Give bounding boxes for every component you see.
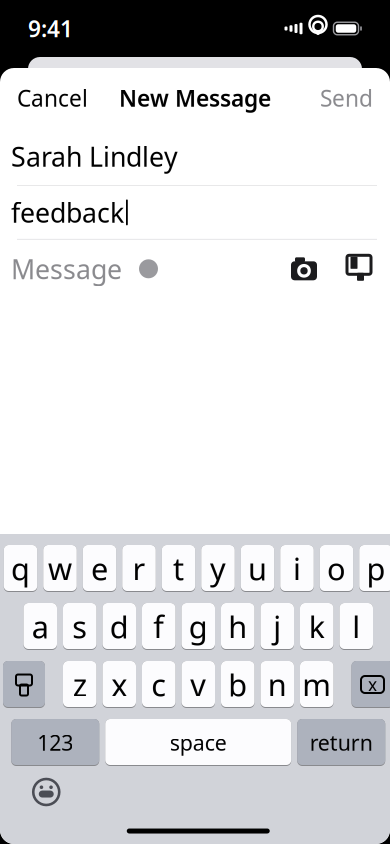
staticText: l <box>352 606 360 647</box>
staticText: v <box>190 664 206 705</box>
button[interactable]: feedback <box>0 186 390 239</box>
staticText: g <box>189 606 208 647</box>
button[interactable]: p <box>359 545 390 592</box>
staticText: a <box>32 606 49 647</box>
button[interactable]: 123 <box>11 719 99 766</box>
staticText: q <box>11 548 30 589</box>
staticText: h <box>228 606 247 647</box>
staticText: space <box>170 728 227 757</box>
staticText: return <box>310 728 373 757</box>
staticText: w <box>48 548 72 589</box>
button[interactable]: x <box>102 661 136 708</box>
staticText: m <box>302 664 331 705</box>
staticText: x <box>368 673 377 696</box>
button[interactable]: Sarah Lindley <box>0 128 390 185</box>
staticText: Sarah Lindley <box>11 139 178 174</box>
button[interactable]: m <box>300 661 333 708</box>
staticText: Cancel <box>17 83 88 113</box>
button[interactable]: a <box>23 603 57 650</box>
staticText: r <box>132 548 145 589</box>
button[interactable]: s <box>63 603 96 650</box>
button[interactable]: v <box>181 661 215 708</box>
staticText: feedback <box>11 195 124 230</box>
button[interactable]: Cancel <box>11 73 94 123</box>
button[interactable]: f <box>142 603 175 650</box>
staticText: k <box>309 606 325 647</box>
staticText: Send <box>320 83 373 113</box>
button[interactable]: h <box>221 603 254 650</box>
staticText: Message <box>11 251 122 286</box>
button[interactable]: y <box>201 545 235 592</box>
staticText: b <box>228 664 247 705</box>
button[interactable]: q <box>4 545 37 592</box>
button[interactable]: o <box>320 545 353 592</box>
button[interactable]: g <box>181 603 215 650</box>
staticText: p <box>366 548 385 589</box>
button[interactable]: b <box>221 661 254 708</box>
staticText: 123 <box>37 728 73 757</box>
staticText: o <box>327 548 346 589</box>
button[interactable]: w <box>43 545 77 592</box>
button[interactable]: e <box>83 545 116 592</box>
button[interactable]: r <box>122 545 156 592</box>
staticText: x <box>111 664 127 705</box>
staticText: s <box>72 606 87 647</box>
button[interactable]: c <box>142 661 175 708</box>
staticText: t <box>173 548 184 589</box>
button[interactable]: j <box>260 603 294 650</box>
button[interactable]: z <box>63 661 96 708</box>
button[interactable]: Send <box>314 73 379 123</box>
staticText: i <box>293 548 301 589</box>
button[interactable]: d <box>102 603 136 650</box>
staticText: z <box>73 664 87 705</box>
button[interactable]: n <box>260 661 294 708</box>
button[interactable]: k <box>300 603 333 650</box>
staticText: New Message <box>119 83 271 113</box>
staticText: 9:41 <box>28 13 73 43</box>
staticText: n <box>268 664 287 705</box>
button[interactable]: return <box>297 719 385 766</box>
button[interactable]: Emoji keyboard <box>24 770 68 814</box>
button[interactable]: Shift <box>3 661 45 708</box>
staticText: f <box>153 606 164 647</box>
staticText: u <box>248 548 267 589</box>
staticText: y <box>210 548 226 589</box>
button[interactable]: Message apps <box>339 250 379 288</box>
button[interactable]: l <box>339 603 373 650</box>
button[interactable]: u <box>241 545 274 592</box>
button[interactable]: space <box>105 719 291 766</box>
staticText: e <box>91 548 108 589</box>
staticText: c <box>151 664 166 705</box>
staticText: d <box>110 606 129 647</box>
button[interactable]: Delete <box>351 661 390 708</box>
button[interactable]: t <box>162 545 195 592</box>
button[interactable]: i <box>280 545 314 592</box>
staticText: j <box>273 606 281 647</box>
button[interactable]: Take photo <box>284 250 324 287</box>
